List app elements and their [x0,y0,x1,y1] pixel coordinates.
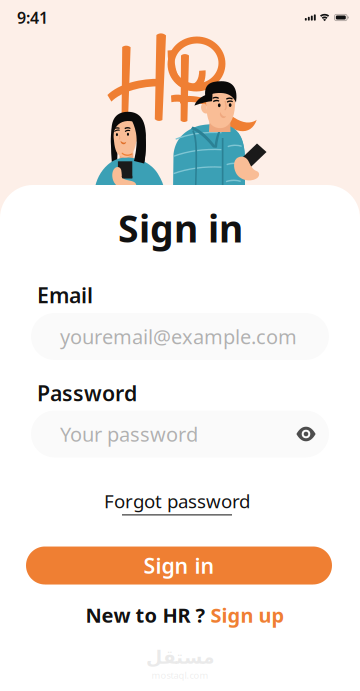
staticText: Sign in [143,551,214,580]
button[interactable]: Forgot password [104,489,250,515]
staticText: New to HR ? [85,602,210,628]
button[interactable]: Sign in [26,546,332,584]
staticText: Password [37,379,137,407]
staticText: Sign in [118,203,243,253]
staticText: mostaql.com [151,669,208,681]
staticText: 9:41 [17,7,48,28]
staticText: youremail@example.com [60,323,297,350]
staticText: Your password [60,421,198,447]
staticText: Sign up [210,602,284,628]
button[interactable]: Sign up [210,602,284,628]
staticText: Forgot password [104,489,250,513]
staticText: Email [37,281,93,309]
staticText: مستقل [145,647,214,668]
button[interactable]: Show password [283,410,329,457]
